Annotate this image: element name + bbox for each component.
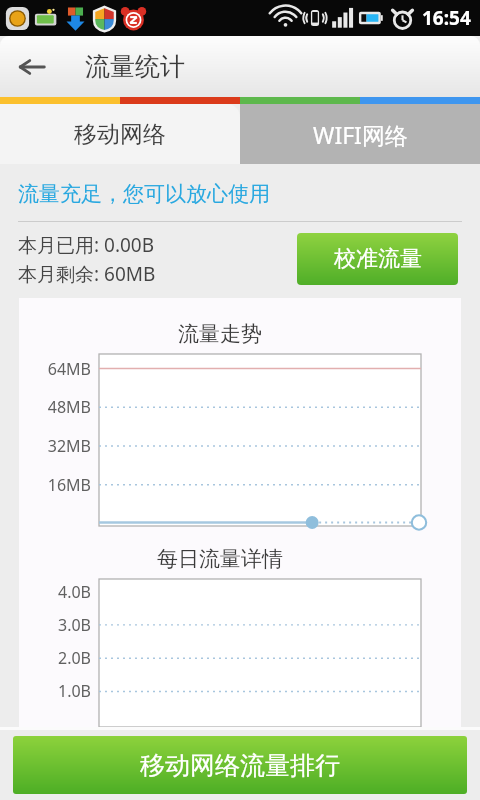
button[interactable]: 移动网络 — [0, 104, 240, 164]
staticText: 1.0B — [19, 680, 91, 702]
button[interactable]: Back — [6, 41, 58, 93]
staticText: 流量统计 — [85, 51, 185, 82]
staticText: 移动网络 — [74, 120, 166, 149]
staticText: 流量走势 — [19, 321, 421, 347]
staticText: 16MB — [19, 474, 91, 496]
staticText: 每日流量详情 — [19, 546, 421, 572]
staticText: 48MB — [19, 396, 91, 418]
staticText: 4.0B — [19, 581, 91, 603]
staticText: 校准流量 — [334, 245, 422, 273]
staticText: 2.0B — [19, 647, 91, 669]
button[interactable]: WIFI网络 — [240, 104, 480, 164]
staticText: 16:54 — [422, 5, 471, 31]
staticText: 本月已用: 0.00B — [18, 232, 155, 258]
staticText: 本月剩余: 60MB — [18, 261, 156, 287]
staticText: 3.0B — [19, 614, 91, 636]
staticText: 流量充足，您可以放心使用 — [18, 181, 270, 207]
staticText: 移动网络流量排行 — [140, 750, 340, 781]
staticText: 32MB — [19, 435, 91, 457]
staticText: WIFI网络 — [313, 119, 408, 150]
button[interactable]: 校准流量 — [297, 233, 458, 285]
button[interactable]: 移动网络流量排行 — [13, 736, 467, 794]
staticText: 64MB — [19, 358, 91, 380]
